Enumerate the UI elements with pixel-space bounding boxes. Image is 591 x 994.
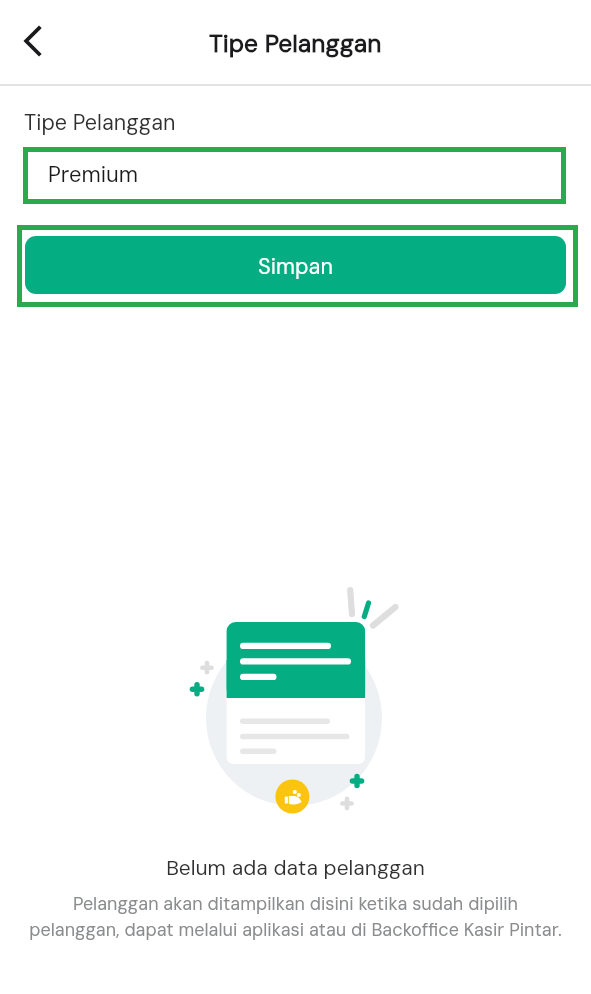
button[interactable]: Simpan bbox=[25, 236, 566, 294]
staticText: Simpan bbox=[258, 252, 333, 280]
staticText: Tipe Pelanggan bbox=[209, 28, 382, 60]
staticText: Belum ada data pelanggan bbox=[0, 854, 591, 881]
staticText: Premium bbox=[48, 160, 139, 189]
button[interactable]: Back bbox=[9, 17, 57, 65]
staticText: Pelanggan akan ditampilkan disini ketika… bbox=[26, 892, 565, 941]
staticText: Tipe Pelanggan bbox=[24, 109, 176, 137]
button[interactable]: Premium bbox=[23, 147, 566, 204]
